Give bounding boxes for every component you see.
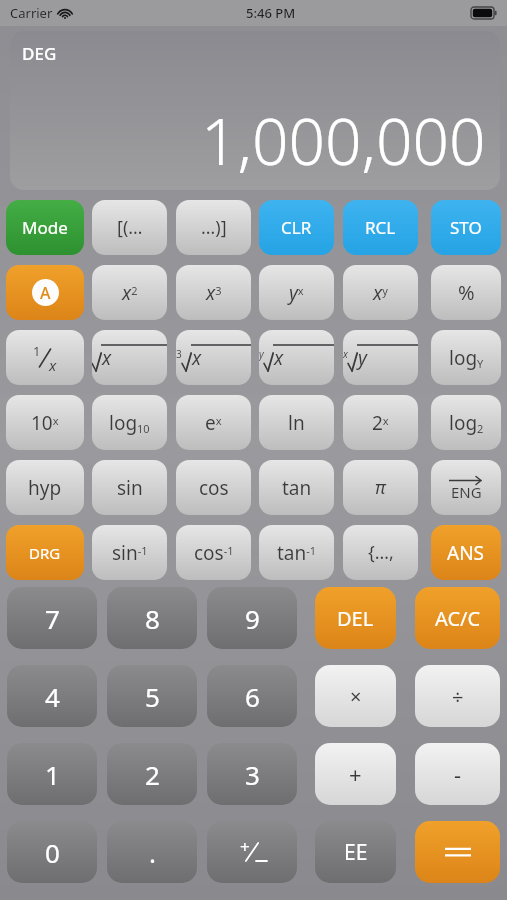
staticText: 3 xyxy=(176,347,182,361)
button[interactable]: ÷ xyxy=(415,665,500,727)
button[interactable]: log base 2 xyxy=(431,395,501,450)
button[interactable]: ln xyxy=(259,395,334,450)
button[interactable]: arc cosine xyxy=(176,525,251,580)
staticText: ex xyxy=(205,410,222,436)
button[interactable]: sin xyxy=(92,460,167,515)
staticText: 1,000,000 xyxy=(201,97,486,184)
button[interactable]: x to the y xyxy=(343,265,418,320)
button[interactable]: x root of y xyxy=(343,330,418,385)
button[interactable]: 9 xyxy=(207,587,297,649)
button[interactable]: 5 xyxy=(107,665,197,727)
staticText: 4 xyxy=(45,679,60,714)
button[interactable]: 3 xyxy=(207,743,297,805)
staticText: A xyxy=(40,282,51,304)
staticText: EE xyxy=(344,838,368,867)
staticText: hyp xyxy=(28,475,62,501)
staticText: yx xyxy=(289,280,304,306)
staticText: …)] xyxy=(201,215,227,240)
staticText: + xyxy=(240,835,250,858)
button[interactable]: DEL xyxy=(315,587,396,649)
button[interactable]: y root of x xyxy=(259,330,334,385)
button[interactable]: Alpha xyxy=(6,265,84,320)
button[interactable]: …)] xyxy=(176,200,251,255)
staticText: DEG xyxy=(22,42,57,65)
staticText: - xyxy=(454,759,462,789)
staticText: × xyxy=(350,683,362,710)
button[interactable]: y to the x xyxy=(259,265,334,320)
button[interactable]: 8 xyxy=(107,587,197,649)
button[interactable]: x cubed xyxy=(176,265,251,320)
button[interactable]: hyp xyxy=(6,460,84,515)
staticText: 9 xyxy=(245,601,260,636)
staticText: ÷ xyxy=(452,683,464,710)
button[interactable]: DRG xyxy=(6,525,84,580)
button[interactable]: pi xyxy=(343,460,418,515)
staticText: x3 xyxy=(206,280,222,306)
button[interactable]: × xyxy=(315,665,396,727)
button[interactable]: log base 10 xyxy=(92,395,167,450)
button[interactable]: log base Y xyxy=(431,330,501,385)
button[interactable]: AC/C xyxy=(415,587,500,649)
staticText: ANS xyxy=(447,540,485,566)
button[interactable]: 7 xyxy=(7,587,97,649)
staticText: 6 xyxy=(245,679,260,714)
button[interactable]: ENG xyxy=(431,460,501,515)
staticText: x xyxy=(102,345,112,371)
button[interactable]: tan xyxy=(259,460,334,515)
staticText: sin-1 xyxy=(112,540,148,566)
staticText: 1 xyxy=(33,342,41,360)
staticText: 8 xyxy=(145,601,160,636)
staticText: + xyxy=(349,759,362,789)
button[interactable]: x squared xyxy=(92,265,167,320)
staticText: cos-1 xyxy=(194,540,234,566)
staticText: x xyxy=(192,345,202,371)
button[interactable]: 1 xyxy=(7,743,97,805)
staticText: 0 xyxy=(45,835,60,870)
button[interactable]: Mode xyxy=(6,200,84,255)
button[interactable]: EE xyxy=(315,821,396,883)
button[interactable]: two to the x xyxy=(343,395,418,450)
staticText: CLR xyxy=(281,216,312,239)
staticText: tan-1 xyxy=(277,540,317,566)
button[interactable]: % xyxy=(431,265,501,320)
staticText: ln xyxy=(288,410,305,436)
staticText: x xyxy=(49,355,57,375)
button[interactable]: cos xyxy=(176,460,251,515)
button[interactable]: ANS xyxy=(431,525,501,580)
button[interactable]: 4 xyxy=(7,665,97,727)
button[interactable]: arc sine xyxy=(92,525,167,580)
button[interactable]: arc tangent xyxy=(259,525,334,580)
staticText: . xyxy=(149,835,156,870)
button[interactable]: plus minus xyxy=(207,821,297,883)
button[interactable]: [(… xyxy=(92,200,167,255)
button[interactable]: STO xyxy=(431,200,501,255)
staticText: DEL xyxy=(337,605,374,632)
button[interactable]: ten to the x xyxy=(6,395,84,450)
button[interactable]: 2 xyxy=(107,743,197,805)
staticText: logY xyxy=(449,345,484,371)
staticText: Carrier xyxy=(10,4,53,22)
staticText: 5 xyxy=(145,679,160,714)
staticText: cos xyxy=(199,475,229,501)
button[interactable]: one over x xyxy=(6,330,84,385)
button[interactable]: + xyxy=(315,743,396,805)
button[interactable]: e to the x xyxy=(176,395,251,450)
staticText: ENG xyxy=(451,482,482,502)
staticText: {…, xyxy=(368,540,394,565)
button[interactable]: {…, xyxy=(343,525,418,580)
button[interactable]: 0 xyxy=(7,821,97,883)
button[interactable]: cube root xyxy=(176,330,251,385)
staticText: 5:46 PM xyxy=(246,4,296,22)
staticText: log2 xyxy=(449,410,484,436)
staticText: π xyxy=(375,475,386,500)
button[interactable]: RCL xyxy=(343,200,418,255)
staticText: AC/C xyxy=(435,605,481,632)
button[interactable]: CLR xyxy=(259,200,334,255)
button[interactable]: 6 xyxy=(207,665,297,727)
staticText: 1 xyxy=(45,757,60,792)
button[interactable]: equals xyxy=(415,821,500,883)
button[interactable]: square root xyxy=(92,330,167,385)
button[interactable]: . xyxy=(107,821,197,883)
staticText: % xyxy=(458,279,475,306)
button[interactable]: - xyxy=(415,743,500,805)
